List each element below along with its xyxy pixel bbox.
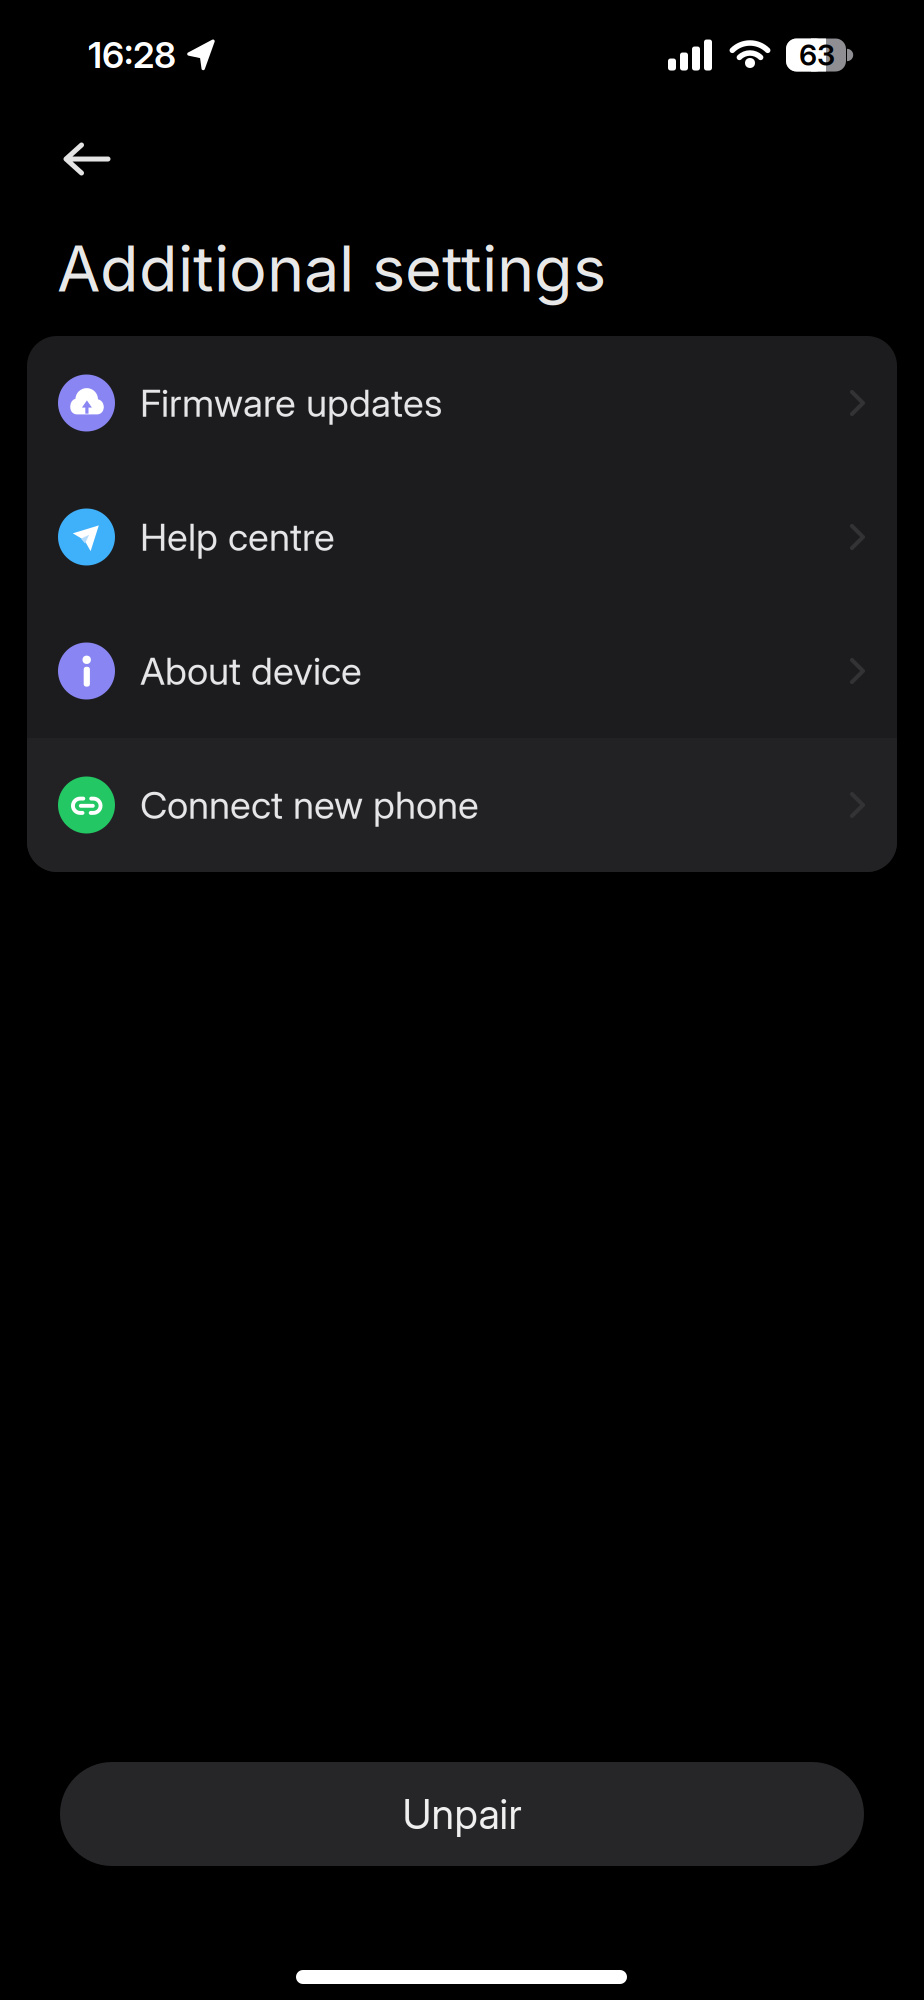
staticText: Unpair bbox=[402, 1789, 521, 1839]
button[interactable]: Connect new phone bbox=[27, 738, 897, 872]
staticText: Connect new phone bbox=[140, 782, 479, 828]
staticText: Additional settings bbox=[57, 230, 606, 307]
button[interactable]: Unpair bbox=[60, 1762, 864, 1866]
staticText: Help centre bbox=[140, 514, 335, 560]
button[interactable]: Help centre bbox=[27, 470, 897, 604]
staticText: About device bbox=[140, 648, 362, 694]
staticText: Firmware updates bbox=[140, 380, 442, 426]
staticText: 16:28 bbox=[88, 33, 176, 77]
button[interactable]: Firmware updates bbox=[27, 336, 897, 470]
staticText: 63 bbox=[799, 37, 835, 73]
button[interactable]: About device bbox=[27, 604, 897, 738]
button[interactable]: Back bbox=[63, 142, 111, 176]
